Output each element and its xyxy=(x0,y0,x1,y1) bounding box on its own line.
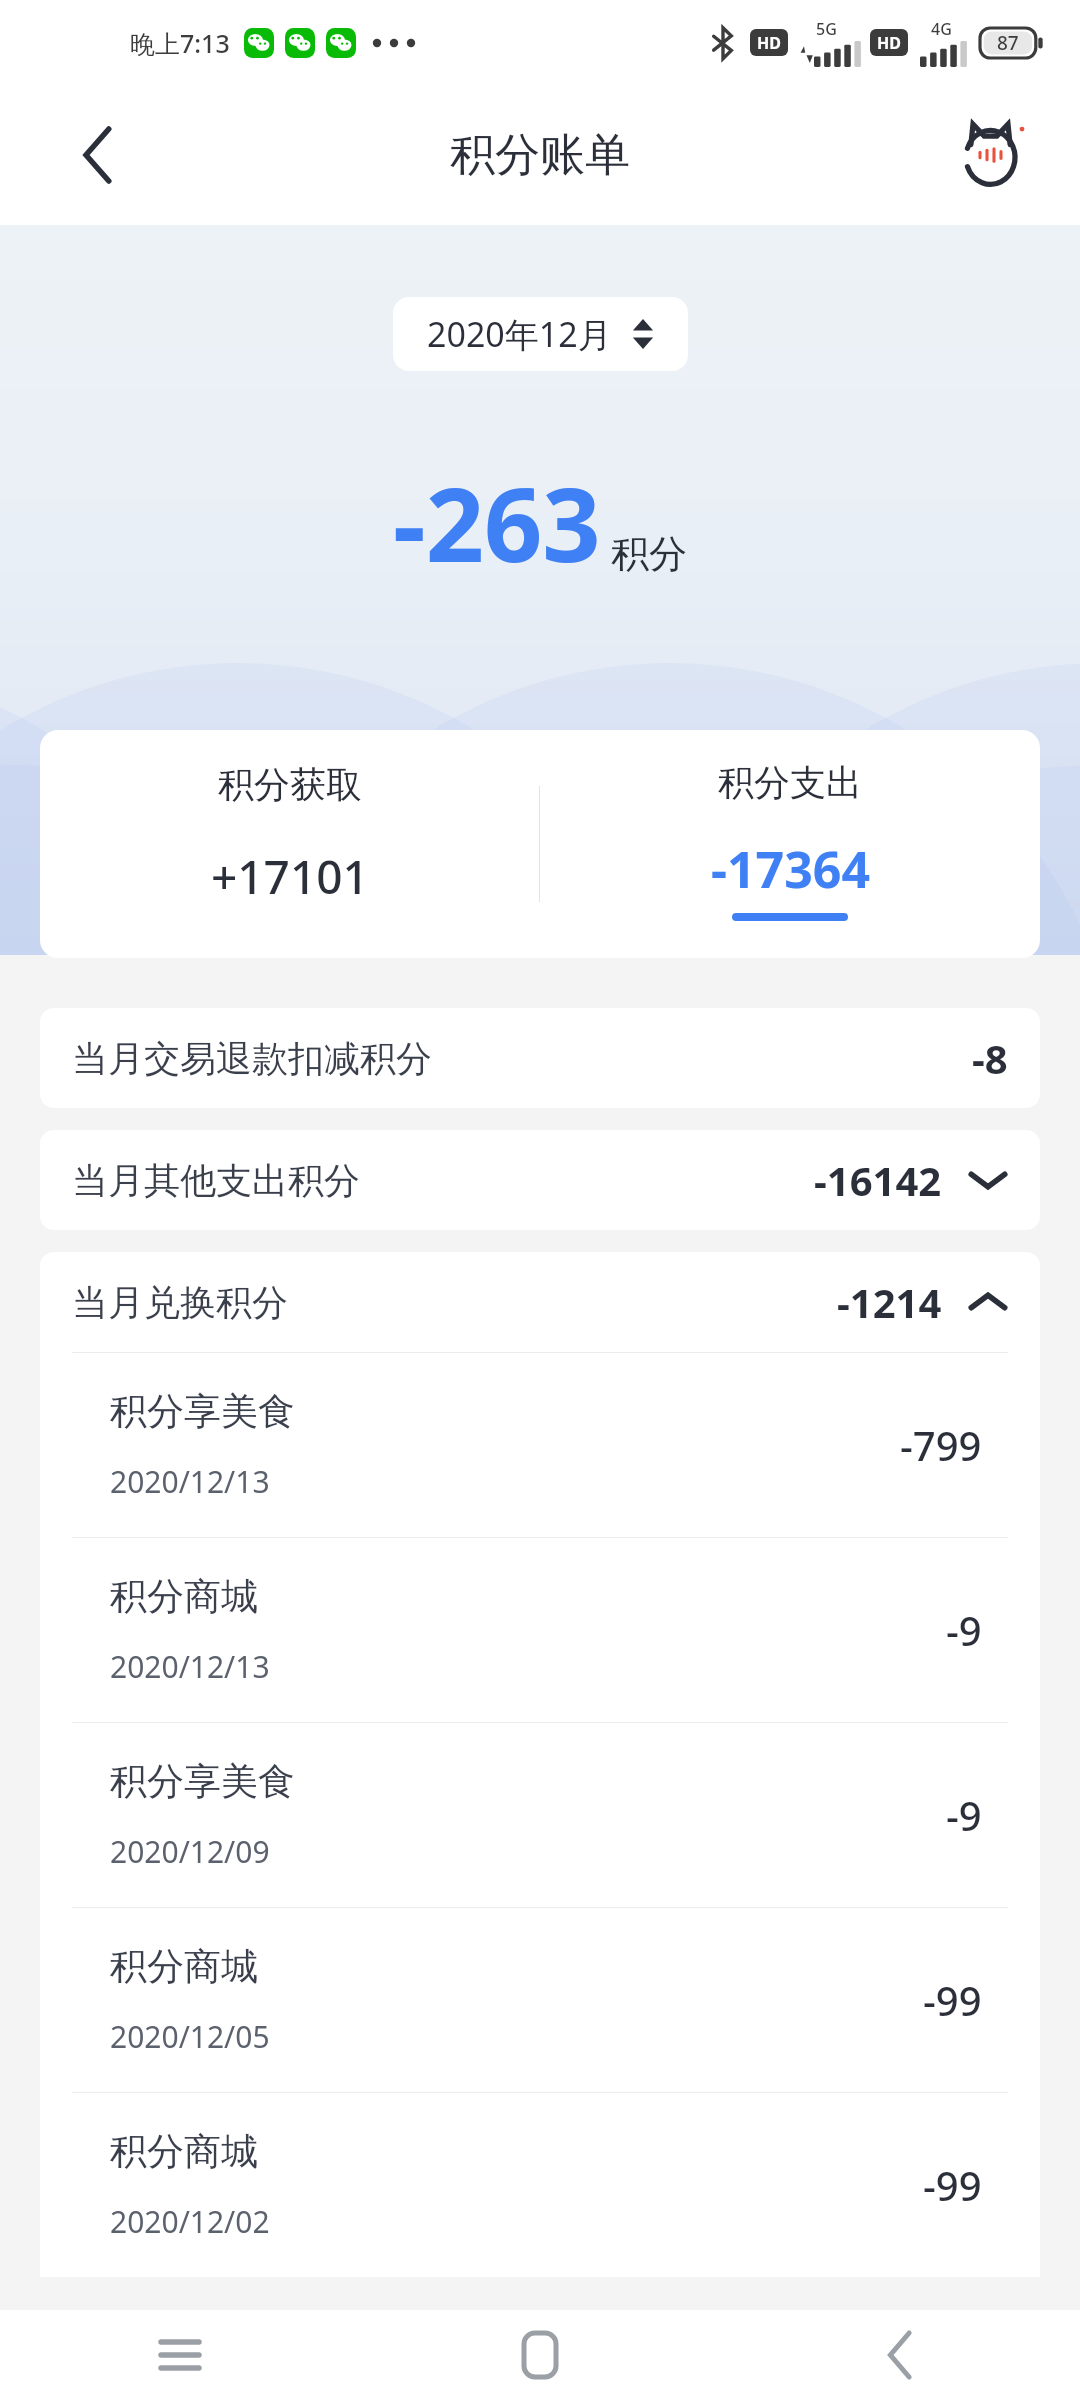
staticText: HD xyxy=(877,32,901,54)
staticText: -263 xyxy=(393,453,601,592)
staticText: 2020/12/13 xyxy=(110,1646,270,1687)
staticText: 4G xyxy=(931,18,952,40)
staticText: 晚上7:13 xyxy=(130,26,230,60)
button[interactable]: 2020年12月 xyxy=(393,297,688,371)
button[interactable]: 积分支出 xyxy=(540,730,1040,958)
button[interactable]: Back xyxy=(52,109,144,201)
staticText: -99 xyxy=(923,1973,982,2027)
button[interactable]: 当月兑换积分 xyxy=(40,1252,1040,1352)
staticText: -16142 xyxy=(814,1153,942,1207)
staticText: 2020/12/09 xyxy=(110,1831,270,1872)
button[interactable]: Customer service xyxy=(948,109,1040,201)
staticText: 积分商城 xyxy=(110,1573,258,1620)
staticText: 87 xyxy=(997,30,1019,56)
button[interactable]: 积分获取 xyxy=(40,730,539,958)
staticText: +17101 xyxy=(211,845,369,908)
staticText: 积分支出 xyxy=(718,760,862,805)
staticText: 当月交易退款扣减积分 xyxy=(72,1036,432,1081)
staticText: 积分获取 xyxy=(218,762,362,807)
button[interactable]: 积分商城 xyxy=(40,1908,1040,2092)
button[interactable]: 积分享美食 xyxy=(40,1723,1040,1907)
button[interactable]: 当月其他支出积分 xyxy=(40,1130,1040,1230)
staticText: -8 xyxy=(972,1031,1008,1085)
staticText: 积分享美食 xyxy=(110,1758,295,1805)
staticText: -17364 xyxy=(711,835,870,903)
button[interactable]: Home xyxy=(360,2310,720,2400)
staticText: HD xyxy=(757,32,781,54)
staticText: 积分 xyxy=(611,530,687,578)
staticText: -99 xyxy=(923,2158,982,2212)
button[interactable]: 当月交易退款扣减积分 xyxy=(40,1008,1040,1108)
button[interactable]: Back xyxy=(720,2310,1080,2400)
staticText: 2020/12/05 xyxy=(110,2016,270,2057)
staticText: -799 xyxy=(900,1418,982,1472)
staticText: 2020/12/13 xyxy=(110,1461,270,1502)
button[interactable]: 积分商城 xyxy=(40,1538,1040,1722)
staticText: 5G xyxy=(816,18,837,40)
staticText: -1214 xyxy=(837,1275,942,1329)
staticText: 当月兑换积分 xyxy=(72,1280,288,1325)
staticText: -9 xyxy=(946,1603,982,1657)
button[interactable]: Recents xyxy=(0,2310,360,2400)
staticText: 积分商城 xyxy=(110,2128,258,2175)
staticText: 积分账单 xyxy=(450,127,630,184)
staticText: 当月其他支出积分 xyxy=(72,1158,360,1203)
staticText: 积分享美食 xyxy=(110,1388,295,1435)
staticText: -9 xyxy=(946,1788,982,1842)
staticText: 积分商城 xyxy=(110,1943,258,1990)
button[interactable]: 积分享美食 xyxy=(40,1353,1040,1537)
staticText: 2020/12/02 xyxy=(110,2201,270,2242)
staticText: 2020年12月 xyxy=(427,311,612,357)
button[interactable]: 积分商城 xyxy=(40,2093,1040,2277)
